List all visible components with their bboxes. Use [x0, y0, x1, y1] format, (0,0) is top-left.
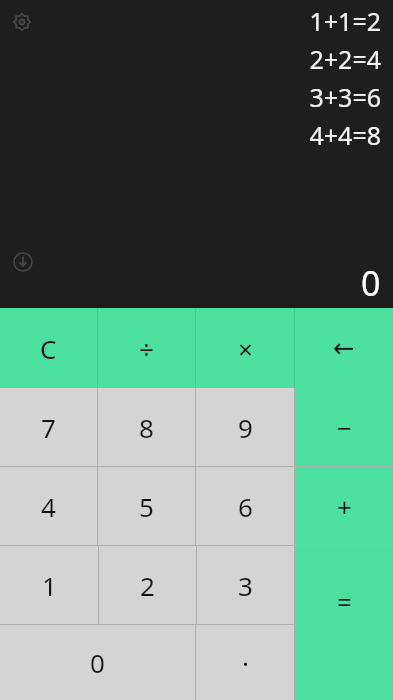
staticText: × — [238, 331, 253, 366]
button[interactable]: Backspace — [295, 308, 393, 388]
staticText: + — [337, 489, 352, 524]
staticText: 3 — [238, 568, 253, 603]
staticText: 6 — [238, 489, 253, 524]
staticText: ÷ — [139, 331, 154, 366]
staticText: 2 — [140, 568, 155, 603]
staticText: = — [337, 584, 352, 619]
button[interactable]: Decimal point — [196, 625, 294, 700]
staticText: 0 — [361, 260, 381, 306]
staticText: − — [337, 410, 352, 445]
staticText: 4+4=8 — [309, 118, 381, 152]
staticText: 0 — [90, 645, 105, 680]
staticText: 2+2=4 — [309, 42, 381, 76]
button[interactable]: 9 — [196, 388, 294, 466]
button[interactable]: 6 — [196, 467, 294, 545]
staticText: 8 — [139, 410, 154, 445]
staticText: C — [40, 331, 57, 366]
button[interactable]: 4 — [0, 467, 97, 545]
staticText: 7 — [41, 410, 56, 445]
button[interactable]: 1+1=2 — [309, 2, 381, 40]
button[interactable]: 2 — [99, 546, 196, 624]
button[interactable]: 1 — [0, 546, 98, 624]
button[interactable]: 5 — [98, 467, 195, 545]
button[interactable]: 4+4=8 — [309, 116, 381, 154]
staticText: · — [242, 645, 249, 680]
button[interactable]: 8 — [98, 388, 195, 466]
button[interactable]: 2+2=4 — [309, 40, 381, 78]
button[interactable]: 3 — [197, 546, 294, 624]
staticText: 9 — [238, 410, 253, 445]
button[interactable]: 0 — [0, 625, 195, 700]
button[interactable]: + — [295, 467, 393, 545]
staticText: ← — [333, 333, 355, 363]
staticText: 1 — [42, 568, 57, 603]
staticText: 3+3=6 — [309, 80, 381, 114]
button[interactable]: 3+3=6 — [309, 78, 381, 116]
button[interactable]: Settings — [8, 8, 36, 36]
button[interactable]: − — [295, 388, 393, 466]
button[interactable]: C — [0, 308, 97, 388]
button[interactable]: × — [196, 308, 294, 388]
button[interactable]: 7 — [0, 388, 97, 466]
staticText: 5 — [139, 489, 154, 524]
button[interactable]: = — [295, 546, 393, 700]
button[interactable]: Save history — [9, 248, 37, 276]
staticText: 1+1=2 — [309, 4, 381, 38]
button[interactable]: ÷ — [98, 308, 195, 388]
button[interactable]: 0 — [361, 260, 381, 306]
staticText: 4 — [41, 489, 56, 524]
